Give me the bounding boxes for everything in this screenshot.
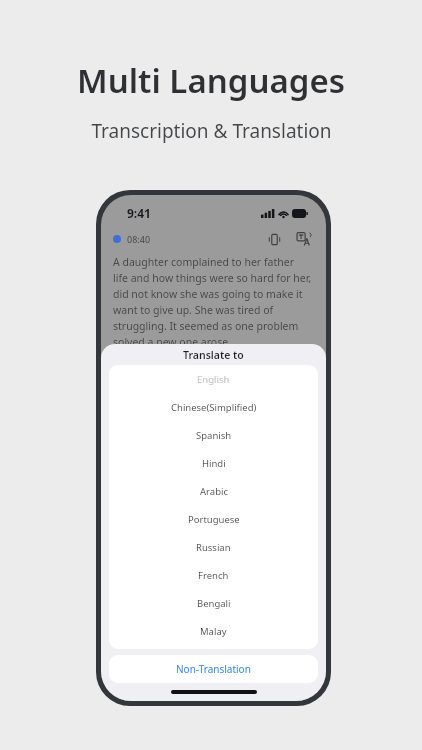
staticText: Russian: [196, 541, 231, 554]
button[interactable]: Portuguese: [109, 505, 318, 533]
button[interactable]: Bengali: [109, 589, 318, 617]
staticText: Bengali: [197, 597, 231, 610]
staticText: 9:41: [127, 205, 151, 221]
staticText: Multi Languages: [77, 58, 345, 103]
staticText: struggling. It seemed as one problem was: [113, 319, 314, 333]
button[interactable]: Chinese(Simplified): [109, 393, 318, 421]
button[interactable]: Spanish: [109, 421, 318, 449]
staticText: French: [198, 569, 229, 582]
button[interactable]: Malay: [109, 617, 318, 645]
staticText: Transcription & Translation: [91, 118, 332, 144]
button[interactable]: Hindi: [109, 449, 318, 477]
staticText: Non-Translation: [176, 662, 251, 676]
staticText: Chinese(Simplified): [171, 401, 257, 414]
button[interactable]: French: [109, 561, 318, 589]
button[interactable]: English: [109, 365, 318, 393]
staticText: Malay: [200, 625, 227, 638]
button[interactable]: Russian: [109, 533, 318, 561]
button[interactable]: Arabic: [109, 477, 318, 505]
staticText: English: [197, 373, 230, 386]
staticText: want to give up. She was tired of fighti…: [113, 303, 314, 317]
staticText: 08:40: [127, 233, 151, 245]
button[interactable]: Non-Translation: [109, 655, 318, 683]
button[interactable]: Vibrate: [264, 229, 284, 249]
staticText: solved a new one arose.: [113, 335, 231, 349]
staticText: Portuguese: [188, 513, 240, 526]
button[interactable]: Translate: [294, 229, 314, 249]
staticText: Hindi: [202, 457, 226, 470]
staticText: Spanish: [196, 429, 232, 442]
staticText: Arabic: [200, 485, 228, 498]
staticText: A daughter complained to her father abou…: [113, 255, 314, 269]
staticText: life and how things were so hard for her…: [113, 271, 314, 285]
staticText: Translate to: [183, 348, 244, 362]
staticText: did not know she was going to make it an…: [113, 287, 314, 301]
